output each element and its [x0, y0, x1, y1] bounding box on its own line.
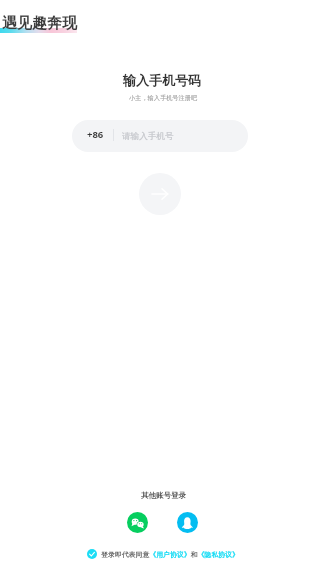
button[interactable]: Next — [139, 173, 181, 215]
staticText: 小主，输入手机号注册吧 — [129, 94, 198, 102]
button[interactable]: +86 — [72, 120, 248, 152]
button[interactable]: QQ login — [177, 512, 198, 533]
staticText: 输入手机号码 — [123, 72, 201, 88]
staticText: 请输入手机号 — [122, 131, 174, 142]
staticText: 遇见趣奔现 — [2, 14, 77, 33]
button[interactable]: Agree to terms — [87, 549, 97, 559]
button[interactable]: WeChat login — [127, 512, 148, 533]
staticText: +86 — [87, 128, 104, 141]
staticText: 其他账号登录 — [141, 491, 186, 500]
staticText: 登录即代表同意《用户协议》和《隐私协议》 — [101, 550, 239, 559]
